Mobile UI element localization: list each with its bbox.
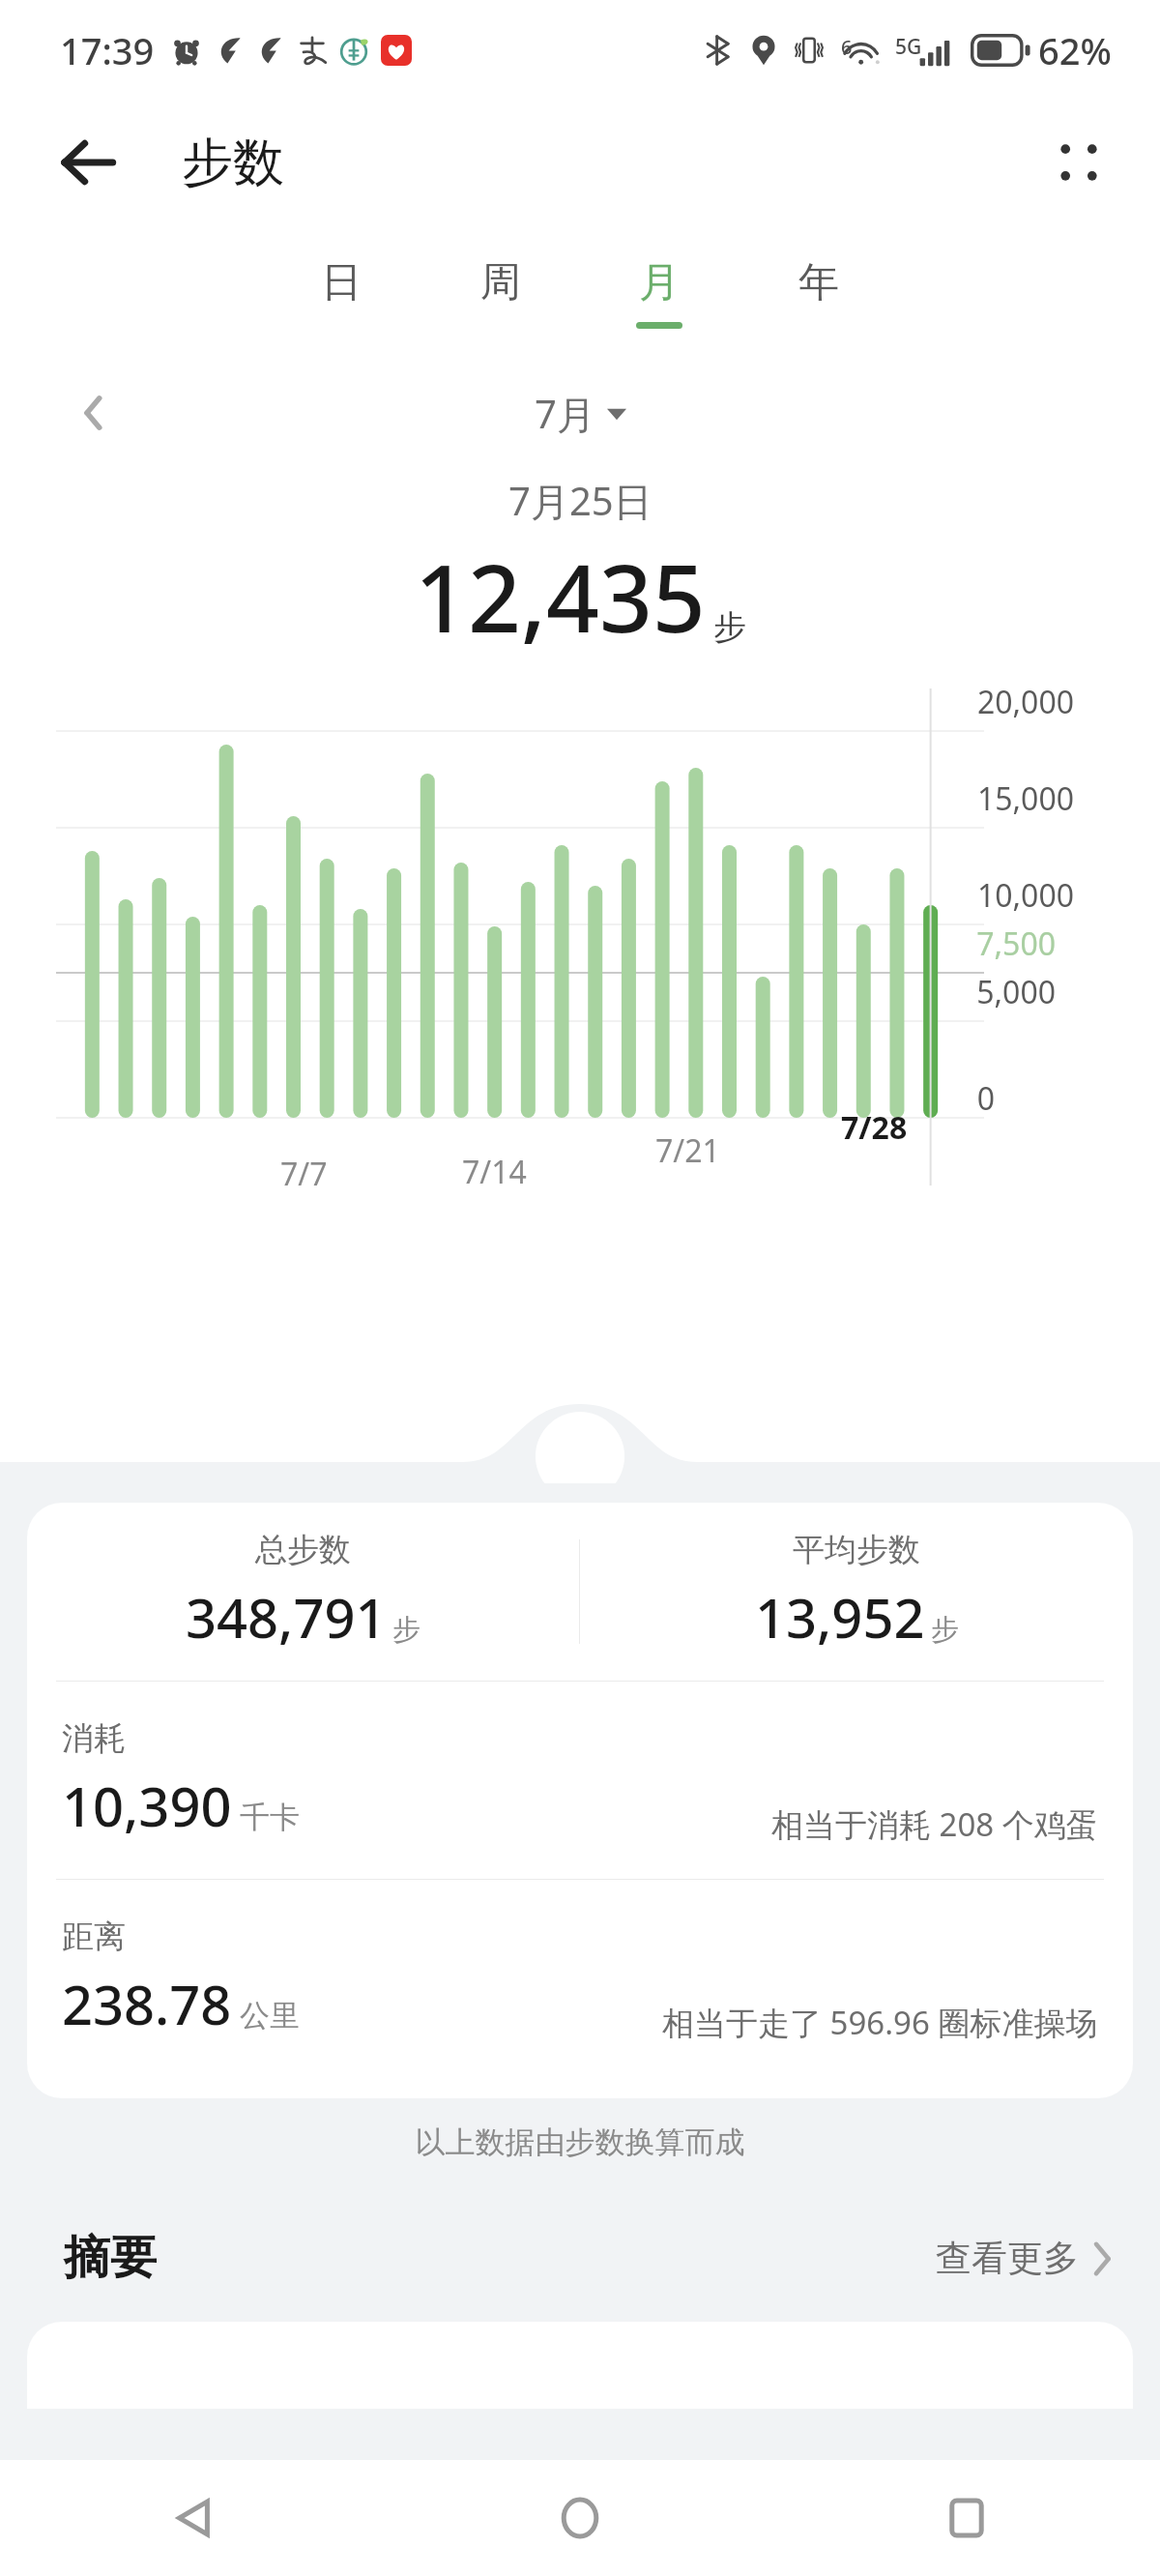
staticText: 7月25日 [508,474,652,527]
staticText: 消耗 [62,1718,126,1759]
staticText: 7,500 [976,922,1056,965]
button[interactable]: 周 [459,257,542,329]
staticText: 62% [1038,25,1112,75]
staticText: 总步数 [255,1530,351,1570]
staticText: 13,952 [755,1580,925,1654]
button[interactable]: 7月 [535,387,626,440]
staticText: 相当于走了 596.96 圈标准操场 [662,2001,1098,2044]
staticText: 20,000 [976,681,1074,723]
staticText: 步 [713,606,746,648]
button[interactable]: 消耗 [27,1682,1133,1879]
button[interactable]: 平均步数 [580,1503,1133,1681]
button[interactable]: More options [1038,122,1119,203]
button[interactable]: Previous month [60,379,130,447]
staticText: 距离 [62,1917,126,1957]
staticText: 月 [639,257,680,308]
button[interactable]: 年 [777,257,860,329]
staticText: 步数 [182,131,284,195]
staticText: 5G [895,33,922,61]
staticText: 年 [798,257,839,308]
staticText: 相当于消耗 208 个鸡蛋 [771,1802,1098,1846]
staticText: 周 [480,257,521,308]
button[interactable]: Back [0,2460,387,2576]
staticText: 步 [392,1612,420,1648]
staticText: 步 [931,1612,959,1648]
button[interactable]: Recent apps [773,2460,1160,2576]
button[interactable]: Back [46,122,128,203]
staticText: 15,000 [976,777,1074,820]
staticText: 17:39 [60,25,155,75]
staticText: 以上数据由步数换算而成 [0,2123,1160,2161]
staticText: 238.78 [62,1967,232,2040]
staticText: 0 [976,1077,995,1120]
button[interactable]: 日 [300,257,383,329]
staticText: 5,000 [976,971,1056,1013]
staticText: 10,390 [62,1769,232,1842]
button[interactable]: 月 [618,257,701,329]
staticText: 日 [321,257,362,308]
staticText: 7月 [535,387,595,440]
button[interactable]: 距离 [27,1880,1133,2077]
staticText: 12,435 [415,533,706,659]
staticText: 查看更多 [936,2236,1079,2281]
staticText: 7/28 [841,1106,908,1149]
staticText: 平均步数 [793,1530,920,1570]
staticText: 7/21 [655,1129,720,1172]
staticText: 公里 [240,1997,300,2034]
staticText: 千卡 [240,1799,300,1836]
staticText: 10,000 [976,874,1074,917]
staticText: 摘要 [64,2229,157,2287]
button[interactable]: Home [387,2460,773,2576]
staticText: 7/7 [280,1153,328,1195]
staticText: 348,791 [186,1580,387,1654]
button[interactable]: 查看更多 [936,2236,1114,2281]
button[interactable]: 总步数 [27,1503,579,1681]
staticText: 7/14 [462,1151,527,1193]
staticText: 6 [841,34,853,60]
